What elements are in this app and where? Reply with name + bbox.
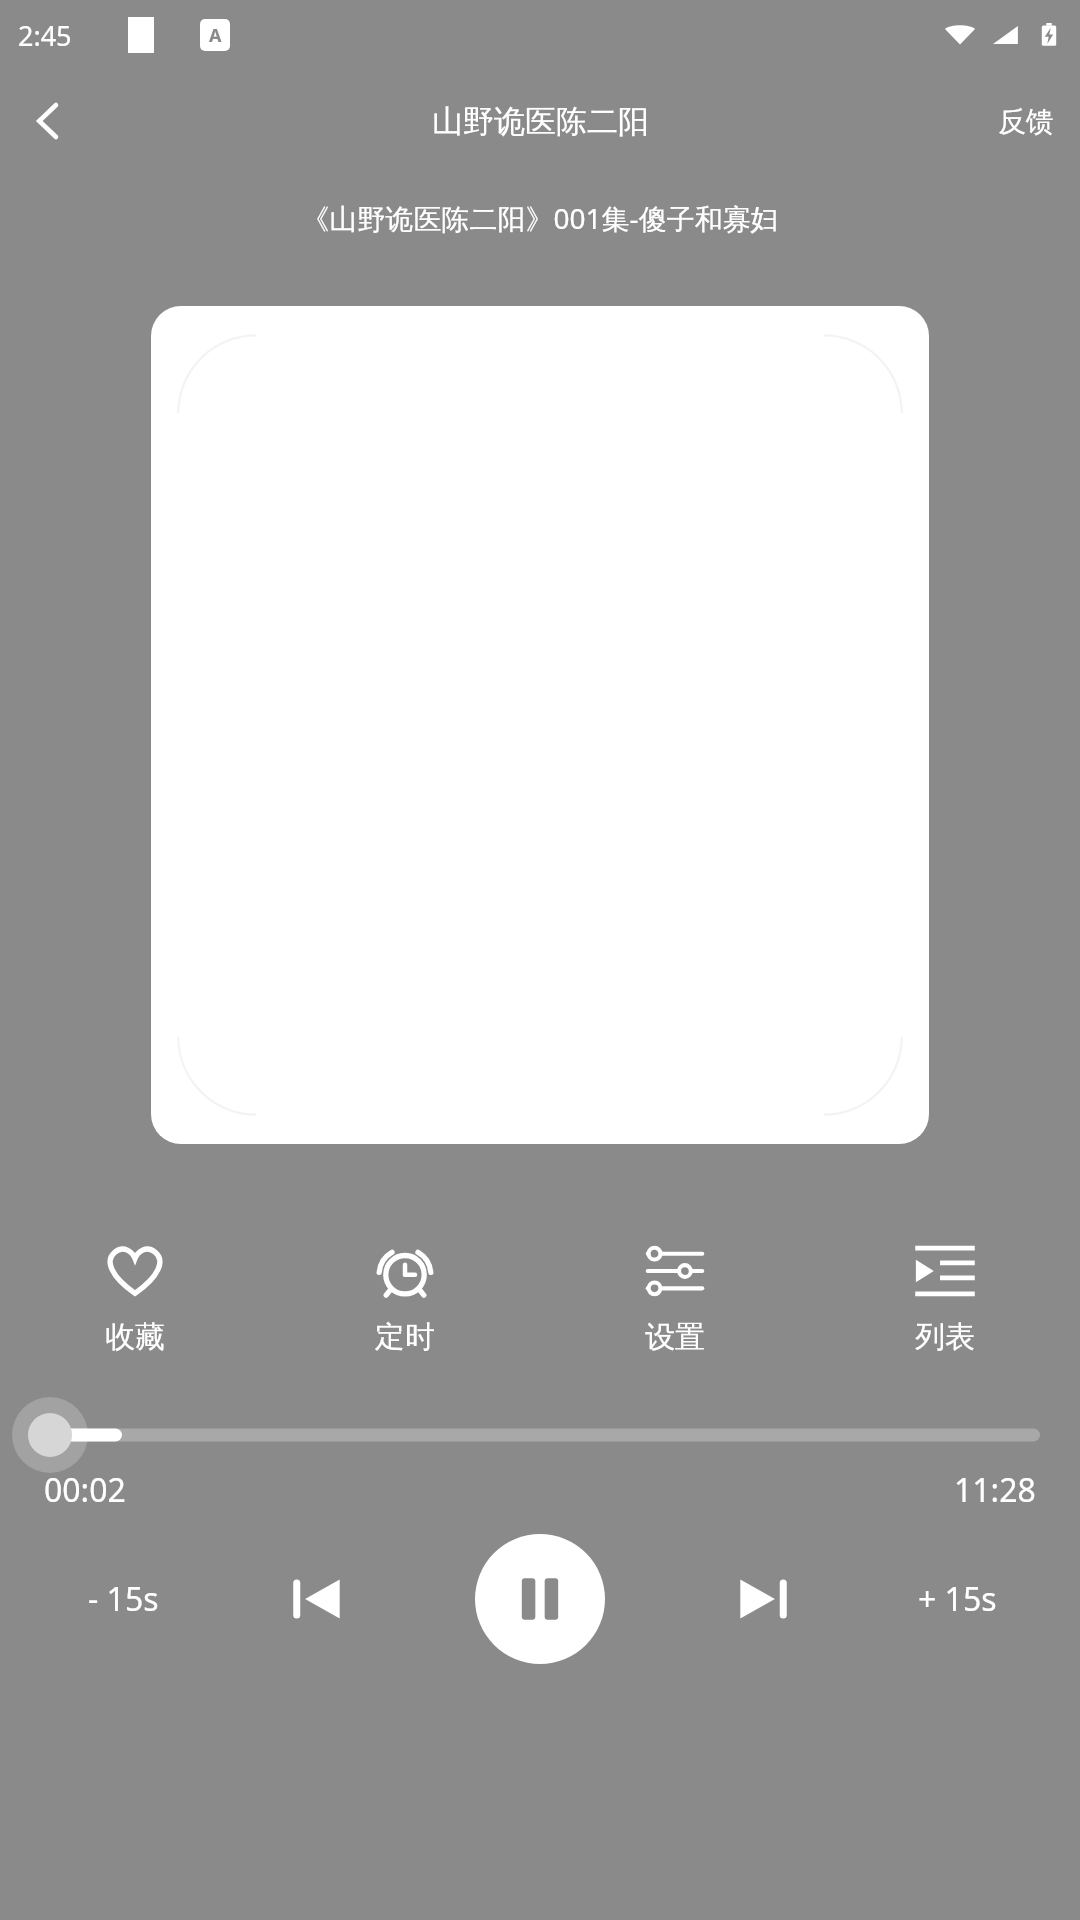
button[interactable]: Next: [666, 1572, 860, 1626]
button[interactable]: Pause: [414, 1534, 666, 1664]
staticText: 《山野诡医陈二阳》001集-傻子和寡妇: [301, 199, 779, 237]
button[interactable]: 定时: [270, 1236, 540, 1360]
staticText: 设置: [645, 1318, 705, 1356]
staticText: 山野诡医陈二阳: [432, 102, 649, 141]
staticText: 反馈: [998, 104, 1054, 139]
button[interactable]: Back: [0, 73, 96, 169]
button[interactable]: Previous: [220, 1572, 414, 1626]
staticText: A: [209, 23, 222, 48]
button[interactable]: Seek bar: [0, 1402, 1080, 1468]
staticText: 00:02: [44, 1468, 126, 1512]
button[interactable]: + 15s: [860, 1577, 1054, 1621]
staticText: - 15s: [88, 1577, 159, 1621]
button[interactable]: - 15s: [26, 1577, 220, 1621]
staticText: 列表: [915, 1318, 975, 1356]
staticText: 收藏: [105, 1318, 165, 1356]
staticText: 11:28: [954, 1468, 1036, 1512]
button[interactable]: 列表: [810, 1236, 1080, 1360]
button[interactable]: Cover art: [151, 306, 929, 1144]
staticText: 定时: [375, 1318, 435, 1356]
staticText: 2:45: [18, 17, 72, 54]
button[interactable]: 反馈: [972, 90, 1080, 153]
staticText: + 15s: [918, 1577, 997, 1621]
button[interactable]: 收藏: [0, 1236, 270, 1360]
button[interactable]: 设置: [540, 1236, 810, 1360]
